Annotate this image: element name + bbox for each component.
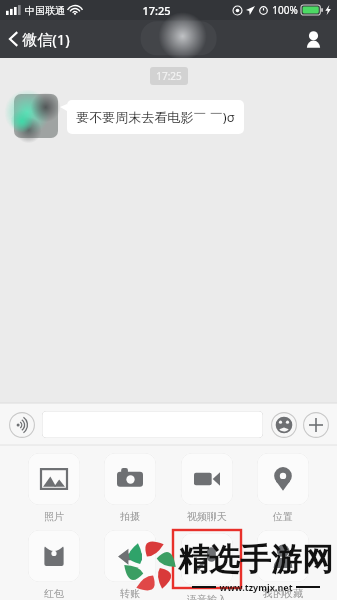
staticText: 位置 bbox=[273, 510, 293, 523]
staticText: 视频聊天 bbox=[187, 510, 227, 523]
staticText: www.tzymjx.net bbox=[219, 581, 293, 593]
staticText: 100% bbox=[272, 3, 298, 17]
button[interactable]: Voice input bbox=[8, 411, 35, 438]
button[interactable]: 照片 bbox=[20, 453, 88, 523]
staticText: 转账 bbox=[120, 587, 140, 600]
staticText: 我的收藏 bbox=[263, 587, 303, 600]
staticText: 中国联通 bbox=[25, 4, 65, 17]
staticText: 照片 bbox=[44, 510, 64, 523]
button[interactable]: 我的收藏 bbox=[249, 530, 317, 600]
button[interactable]: 拍摄 bbox=[96, 453, 164, 523]
button[interactable]: Emoji bbox=[270, 411, 297, 438]
button[interactable]: 位置 bbox=[249, 453, 317, 523]
button[interactable]: Contact profile bbox=[298, 24, 328, 54]
button[interactable]: 转账 bbox=[96, 530, 164, 600]
staticText: 拍摄 bbox=[120, 510, 140, 523]
staticText: 要不要周末去看电影￣ ￣)σ bbox=[76, 108, 235, 126]
staticText: 红包 bbox=[44, 587, 64, 600]
staticText: 精选手游网 bbox=[178, 540, 333, 579]
staticText: 17:25 bbox=[156, 69, 182, 83]
button[interactable]: 微信(1) bbox=[9, 29, 76, 49]
staticText: 语音输入 bbox=[187, 593, 227, 600]
button[interactable]: 要不要周末去看电影￣ ￣)σ bbox=[67, 100, 244, 134]
button[interactable] bbox=[42, 411, 263, 438]
button[interactable]: More options bbox=[302, 411, 329, 438]
button[interactable]: 红包 bbox=[20, 530, 88, 600]
button[interactable]: 视频聊天 bbox=[173, 453, 241, 523]
staticText: 17:25 bbox=[142, 3, 171, 18]
staticText: 微信(1) bbox=[22, 29, 70, 49]
button[interactable]: 语音输入 bbox=[173, 530, 241, 600]
